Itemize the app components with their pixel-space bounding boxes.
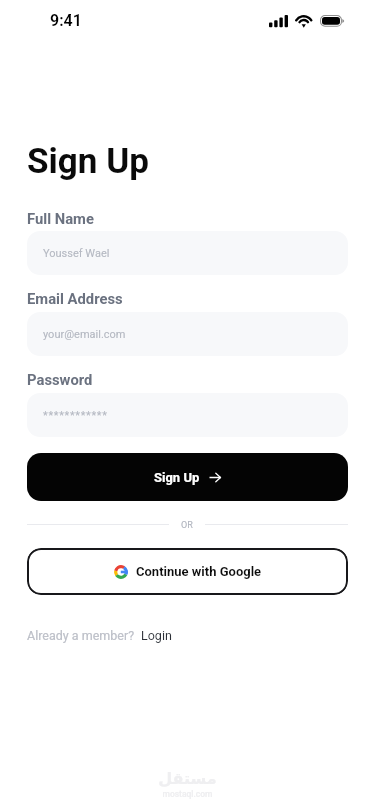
staticText: OR: [181, 520, 193, 531]
button[interactable]: Sign Up: [27, 453, 348, 501]
staticText: Login: [141, 628, 172, 643]
staticText: Sign Up: [154, 470, 200, 485]
button[interactable]: Login: [141, 628, 172, 643]
staticText: Sign Up: [27, 141, 149, 182]
staticText: mostaql.com: [162, 789, 213, 799]
staticText: Youssef Wael: [43, 247, 110, 260]
staticText: 9:41: [50, 11, 82, 30]
staticText: Full Name: [27, 210, 94, 227]
button[interactable]: your@email.com: [27, 312, 348, 356]
staticText: Password: [27, 371, 93, 388]
staticText: ************: [43, 409, 108, 422]
staticText: مستقل: [158, 769, 217, 788]
staticText: Continue with Google: [136, 564, 262, 579]
button[interactable]: Youssef Wael: [27, 231, 348, 275]
staticText: Email Address: [27, 290, 123, 307]
staticText: Already a member?: [27, 628, 135, 643]
button[interactable]: ************: [27, 393, 348, 437]
staticText: your@email.com: [43, 328, 126, 341]
button[interactable]: Continue with Google: [27, 548, 348, 595]
